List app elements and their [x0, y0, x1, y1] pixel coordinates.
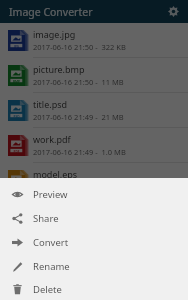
button[interactable]: Delete — [0, 278, 188, 300]
staticText: Share — [33, 212, 59, 225]
button[interactable]: BMP — [0, 58, 188, 92]
staticText: PSD — [8, 115, 25, 119]
staticText: work.pdf — [33, 133, 71, 145]
staticText: 2017-06-16 21:49 - 21 MB — [33, 112, 124, 122]
staticText: 2017-06-16 21:49 - 1.0 MB — [33, 147, 126, 157]
staticText: 2017-06-16 21:49 - 4.2 MB — [33, 182, 126, 192]
button[interactable]: PDF — [0, 128, 188, 162]
staticText: Rename — [33, 260, 70, 273]
staticText: PDF — [8, 150, 25, 154]
button[interactable]: Preview — [0, 182, 188, 206]
staticText: model.eps — [33, 168, 78, 180]
button[interactable]: EPS — [0, 163, 188, 197]
staticText: Delete — [33, 283, 62, 296]
staticText: Preview — [33, 188, 68, 201]
button[interactable] — [0, 0, 188, 178]
button[interactable]: JPG — [0, 23, 188, 57]
staticText: picture.bmp — [33, 63, 85, 75]
button[interactable]: Settings — [165, 3, 182, 20]
staticText: JPG — [8, 45, 25, 49]
staticText: title.psd — [33, 98, 68, 110]
button[interactable]: PSD — [0, 93, 188, 127]
staticText: Convert — [33, 236, 69, 249]
staticText: image.jpg — [33, 28, 76, 40]
staticText: 2017-06-16 21:50 - 322 KB — [33, 42, 126, 52]
button[interactable]: Convert — [0, 230, 188, 254]
button[interactable]: Rename — [0, 254, 188, 278]
staticText: 2017-06-16 21:50 - 11 MB — [33, 77, 124, 87]
staticText: Image Converter — [9, 5, 93, 19]
staticText: BMP — [8, 80, 25, 84]
button[interactable]: Share — [0, 206, 188, 230]
